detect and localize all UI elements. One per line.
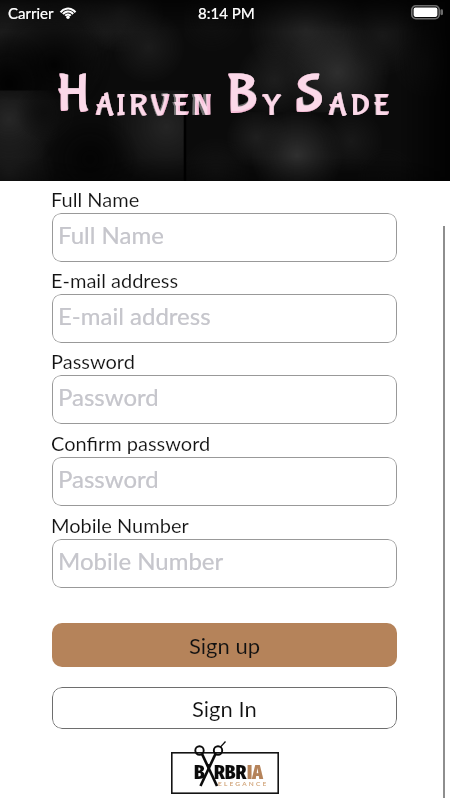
staticText: ADE [328, 88, 394, 124]
staticText: Password [58, 464, 159, 493]
button[interactable]: Full Name [52, 213, 397, 262]
staticText: B [194, 761, 205, 784]
staticText: S [296, 64, 328, 126]
staticText: Sign up [189, 632, 261, 658]
staticText: 8:14 PM [198, 4, 255, 22]
staticText: ADE [329, 89, 393, 123]
staticText: ELEGANCE [218, 780, 269, 788]
staticText: Confirm password [51, 431, 211, 455]
staticText: Mobile Number [51, 513, 189, 537]
staticText: H [57, 64, 94, 126]
staticText: H [56, 63, 95, 127]
button[interactable]: Sign up [52, 623, 397, 667]
staticText: B [226, 63, 262, 127]
staticText: Carrier [8, 4, 54, 22]
staticText: Full Name [58, 220, 164, 249]
staticText: Y [263, 89, 295, 123]
button[interactable]: E-mail address [52, 294, 397, 343]
staticText: IA [247, 761, 263, 784]
staticText: AIRVEN [96, 89, 222, 123]
button[interactable]: Password [52, 457, 397, 506]
staticText: E-mail address [58, 301, 211, 330]
staticText: RBR [214, 761, 247, 784]
staticText: Full Name [51, 187, 140, 211]
button[interactable]: Password [52, 375, 397, 424]
staticText: E-mail address [51, 268, 179, 292]
button[interactable]: Sign In [52, 687, 397, 729]
staticText: Mobile Number [58, 546, 224, 575]
staticText: S [295, 63, 328, 127]
staticText: AIRVEN [95, 88, 226, 124]
button[interactable]: Mobile Number [52, 539, 397, 588]
staticText: B [227, 64, 262, 126]
staticText: Password [51, 349, 135, 373]
staticText: Password [58, 382, 159, 411]
staticText: Sign In [192, 695, 257, 721]
staticText: Y [262, 88, 295, 124]
